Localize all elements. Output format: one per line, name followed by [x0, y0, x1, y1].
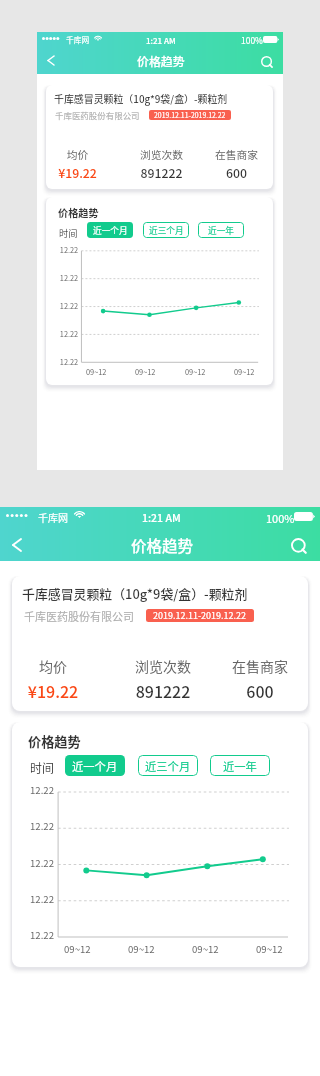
staticText: 09~12 [64, 942, 91, 956]
staticText: 千库网 [66, 34, 90, 45]
button[interactable]: 近三个月 [143, 222, 189, 238]
button[interactable]: 近一年 [210, 755, 270, 776]
staticText: 09~12 [234, 366, 255, 377]
staticText: 近一个月 [72, 758, 118, 774]
staticText: 均价 [43, 147, 112, 163]
staticText: ¥19.22 [8, 679, 98, 702]
staticText: 09~12 [192, 942, 219, 956]
staticText: 浏览次数 [127, 147, 196, 163]
staticText: 600 [215, 679, 305, 702]
staticText: 1:21 AM [142, 510, 181, 525]
staticText: 1:21 AM [146, 35, 176, 47]
staticText: 在售商家 [202, 147, 271, 163]
staticText: ¥19.22 [43, 164, 112, 182]
staticText: 12.22 [56, 328, 82, 339]
staticText: 09~12 [86, 366, 107, 377]
staticText: 2019.12.11-2019.12.22 [154, 110, 226, 120]
button[interactable]: 近一年 [198, 222, 244, 238]
button[interactable]: Search [252, 48, 283, 73]
button[interactable]: 近三个月 [138, 755, 198, 776]
staticText: 12.22 [25, 856, 59, 870]
staticText: 12.22 [56, 244, 82, 255]
staticText: 891222 [118, 679, 208, 702]
staticText: 价格趋势 [58, 205, 99, 220]
staticText: 12.22 [25, 819, 59, 833]
staticText: 浏览次数 [118, 656, 208, 676]
staticText: 近三个月 [149, 224, 184, 237]
staticText: 100% [266, 510, 295, 526]
button[interactable]: 近一个月 [87, 222, 133, 238]
staticText: 09~12 [128, 942, 155, 956]
staticText: 价格趋势 [131, 534, 194, 556]
staticText: 12.22 [25, 892, 59, 906]
staticText: 千库网 [38, 510, 68, 524]
staticText: 100% [241, 34, 263, 46]
staticText: 12.22 [56, 272, 82, 283]
staticText: 千库感冒灵颗粒（10g*9袋/盒）-颗粒剂 [54, 91, 228, 105]
button[interactable]: 近一个月 [65, 755, 125, 776]
staticText: 均价 [8, 656, 98, 676]
staticText: 时间 [59, 226, 78, 239]
staticText: 12.22 [56, 300, 82, 311]
staticText: 09~12 [256, 942, 283, 956]
button[interactable]: Search [280, 528, 320, 561]
staticText: 09~12 [135, 366, 156, 377]
staticText: 千库医药股份有限公司 [24, 608, 134, 624]
staticText: 600 [202, 164, 271, 182]
staticText: 12.22 [25, 928, 59, 942]
staticText: 时间 [30, 759, 55, 776]
staticText: 2019.12.11-2019.12.22 [153, 609, 247, 622]
staticText: 千库医药股份有限公司 [55, 109, 140, 121]
staticText: 12.22 [25, 783, 59, 797]
button[interactable]: Back [0, 528, 40, 561]
button[interactable]: Back [37, 48, 68, 73]
staticText: 09~12 [185, 366, 206, 377]
staticText: 891222 [127, 164, 196, 182]
staticText: 在售商家 [215, 656, 305, 676]
staticText: 12.22 [56, 356, 82, 367]
staticText: 近三个月 [145, 758, 191, 774]
staticText: 价格趋势 [137, 52, 185, 69]
staticText: 价格趋势 [28, 732, 81, 751]
staticText: 近一年 [223, 758, 257, 774]
staticText: 近一个月 [93, 224, 128, 237]
staticText: 千库感冒灵颗粒（10g*9袋/盒）-颗粒剂 [22, 584, 248, 603]
staticText: 近一年 [208, 224, 235, 237]
